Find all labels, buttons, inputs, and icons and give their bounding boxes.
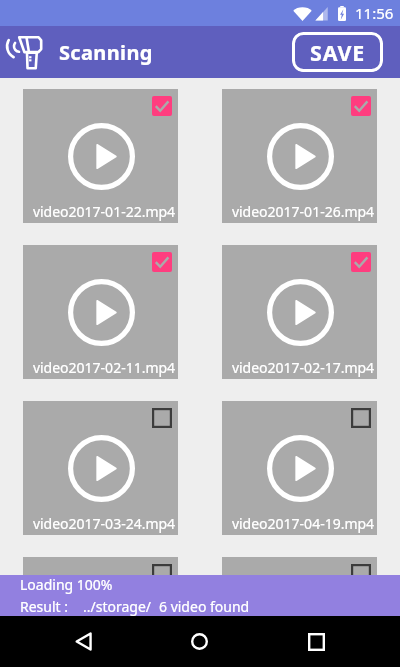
button[interactable]: Select video2017-01-22.mp4 [23, 89, 178, 223]
button[interactable]: Select video2017-06-08.mp4 [351, 564, 371, 575]
staticText: video2017-02-11.mp4 [30, 358, 178, 377]
staticText: video2017-03-24.mp4 [30, 514, 178, 533]
staticText: SAVE [310, 38, 366, 67]
button[interactable]: Select video2017-01-22.mp4 [152, 96, 172, 116]
staticText: video2017-02-17.mp4 [229, 358, 377, 377]
button[interactable]: Select video2017-02-11.mp4 [23, 245, 178, 379]
button[interactable]: Select video2017-02-17.mp4 [222, 245, 377, 379]
staticText: Loading 100% [20, 575, 113, 594]
staticText: Result : [20, 597, 69, 616]
button[interactable]: Select video2017-02-17.mp4 [351, 252, 371, 272]
button[interactable]: Select video2017-04-19.mp4 [351, 408, 371, 428]
staticText: ../storage/ [83, 597, 152, 616]
staticText: 6 video found [159, 597, 250, 616]
staticText: 11:56 [355, 3, 394, 23]
button[interactable]: Select video2017-03-24.mp4 [152, 408, 172, 428]
button[interactable]: Select video2017-05-02.mp4 [152, 564, 172, 575]
button[interactable]: Scanner [5, 32, 45, 72]
button[interactable]: Select video2017-05-02.mp4 [23, 557, 178, 575]
button[interactable]: SAVE [292, 32, 383, 72]
button[interactable]: Select video2017-01-26.mp4 [222, 89, 377, 223]
staticText: video2017-01-22.mp4 [30, 202, 178, 221]
staticText: video2017-04-19.mp4 [229, 514, 377, 533]
button[interactable]: Select video2017-06-08.mp4 [222, 557, 377, 575]
button[interactable]: Select video2017-03-24.mp4 [23, 401, 178, 535]
button[interactable]: Select video2017-01-26.mp4 [351, 96, 371, 116]
button[interactable]: Recents [258, 616, 375, 667]
staticText: Scanning [59, 39, 153, 66]
button[interactable]: Back [25, 616, 141, 667]
button[interactable]: Select video2017-02-11.mp4 [152, 252, 172, 272]
staticText: video2017-01-26.mp4 [229, 202, 377, 221]
button[interactable]: Select video2017-04-19.mp4 [222, 401, 377, 535]
button[interactable]: Home [141, 616, 258, 667]
